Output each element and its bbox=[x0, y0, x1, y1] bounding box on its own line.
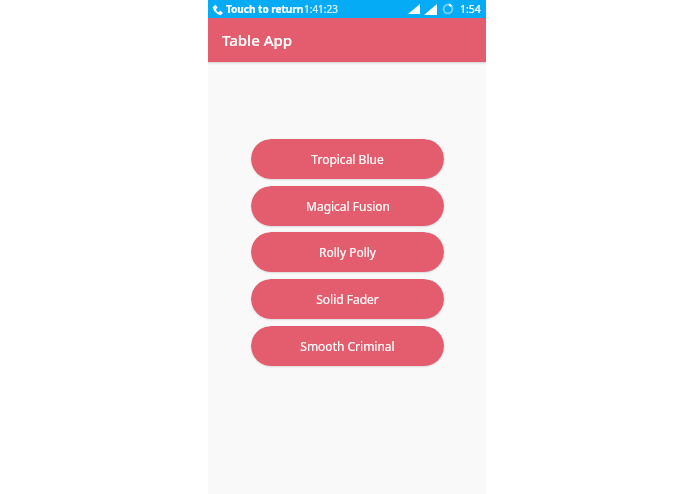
button[interactable]: Tropical Blue bbox=[251, 139, 444, 179]
other: Ongoing call bbox=[212, 4, 223, 15]
staticText: Touch to return bbox=[226, 2, 304, 16]
button[interactable]: Magical Fusion bbox=[251, 186, 444, 226]
staticText: Rolly Polly bbox=[319, 244, 376, 260]
button[interactable]: Solid Fader bbox=[251, 279, 444, 319]
button[interactable]: Rolly Polly bbox=[251, 232, 444, 272]
staticText: Solid Fader bbox=[316, 291, 379, 307]
button[interactable]: Return to call bbox=[212, 4, 223, 15]
other: Battery bbox=[442, 3, 454, 15]
staticText: 1:41:23 bbox=[304, 2, 338, 16]
staticText: 1:54 bbox=[460, 2, 481, 16]
staticText: Smooth Criminal bbox=[300, 338, 395, 354]
other: Mobile signal bbox=[424, 4, 437, 15]
staticText: Table App bbox=[222, 30, 293, 50]
staticText: Magical Fusion bbox=[306, 198, 390, 214]
button[interactable]: Smooth Criminal bbox=[251, 326, 444, 366]
other: Mobile signal bbox=[408, 4, 420, 14]
staticText: Tropical Blue bbox=[311, 151, 384, 167]
